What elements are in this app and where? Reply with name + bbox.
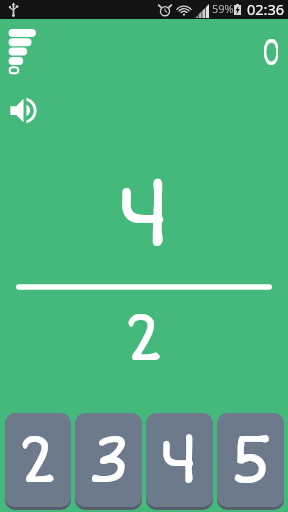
staticText: 2 bbox=[122, 296, 166, 380]
staticText: 5 bbox=[228, 418, 274, 502]
staticText: 59% bbox=[212, 1, 234, 16]
button[interactable]: 2 bbox=[5, 413, 71, 507]
button[interactable]: Level bbox=[0, 29, 40, 83]
button[interactable]: Sound bbox=[6, 93, 41, 128]
staticText: 2 bbox=[16, 418, 60, 502]
staticText: 3 bbox=[87, 418, 131, 502]
staticText: 4 bbox=[116, 156, 173, 272]
button[interactable]: 5 bbox=[217, 413, 284, 507]
button[interactable]: 0 bbox=[257, 30, 283, 70]
staticText: 4 bbox=[159, 418, 200, 502]
button[interactable]: 3 bbox=[75, 413, 142, 507]
button[interactable]: 4 bbox=[146, 413, 213, 507]
staticText: 0 bbox=[262, 30, 278, 70]
staticText: 02:36 bbox=[247, 0, 285, 18]
